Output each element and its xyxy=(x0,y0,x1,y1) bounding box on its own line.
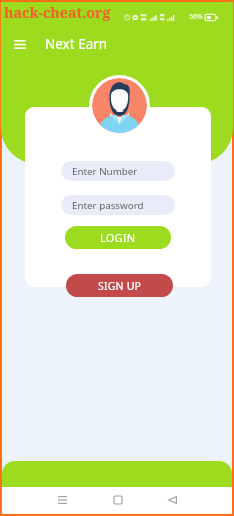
staticText: hack-cheat.org xyxy=(4,3,111,22)
button[interactable]: SIGN UP xyxy=(66,274,173,297)
staticText: 56% xyxy=(189,12,203,22)
button[interactable]: LOGIN xyxy=(65,226,171,249)
button[interactable]: Home xyxy=(104,486,132,513)
button[interactable]: Enter password xyxy=(61,195,175,215)
button[interactable]: Recent apps xyxy=(48,486,76,513)
button[interactable]: Enter Number xyxy=(61,161,175,181)
staticText: Next Earn xyxy=(45,35,108,53)
staticText: Enter Number xyxy=(72,165,138,178)
staticText: SIGN UP xyxy=(98,279,142,293)
button[interactable]: Back xyxy=(158,486,186,513)
staticText: Enter password xyxy=(72,199,144,212)
staticText: LOGIN xyxy=(100,230,136,245)
button[interactable]: Open navigation menu xyxy=(9,33,31,55)
